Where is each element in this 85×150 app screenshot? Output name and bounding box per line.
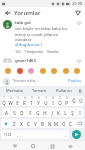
button[interactable]: Geri	[3, 8, 12, 17]
button[interactable]: Gönder	[73, 8, 82, 17]
button[interactable]: Emoji	[39, 67, 47, 75]
staticText: .	[65, 132, 67, 138]
button[interactable]: 4	[21, 96, 28, 106]
staticText: D	[20, 110, 24, 116]
staticText: P	[65, 100, 68, 106]
button[interactable]: tatlı gül	[0, 18, 85, 56]
button[interactable]: 5	[28, 96, 35, 106]
button[interactable]: Emoji	[73, 67, 81, 75]
button[interactable]: K	[55, 108, 62, 117]
staticText: Tamam	[32, 88, 46, 93]
staticText: E	[16, 100, 19, 106]
button[interactable]: 1 beğenme	[24, 49, 47, 54]
button[interactable]: Beğen	[76, 20, 82, 26]
button[interactable]: M	[53, 119, 60, 128]
button[interactable]: 3	[14, 96, 21, 106]
button[interactable]: Emoji	[16, 67, 24, 75]
button[interactable]: 6	[35, 96, 42, 106]
button[interactable]: Ç	[67, 119, 74, 128]
staticText: 6	[38, 96, 40, 100]
button[interactable]: A	[2, 108, 10, 117]
button[interactable]: Kullanıcı	[51, 86, 76, 95]
button[interactable]: N	[46, 119, 53, 128]
button[interactable]: Shift	[1, 119, 11, 128]
staticText: R	[23, 100, 26, 106]
button[interactable]: Yorum ekle…	[13, 78, 68, 84]
staticText: 8	[52, 96, 54, 100]
staticText: tatlı gül	[15, 20, 31, 26]
button[interactable]: C	[25, 119, 32, 128]
button[interactable]: Son kullanılanlar	[48, 142, 56, 150]
staticText: 0	[66, 96, 68, 100]
staticText: L	[64, 110, 67, 116]
staticText: Ş	[71, 110, 74, 116]
button[interactable]: L	[62, 108, 69, 117]
staticText: W	[8, 100, 13, 106]
staticText: Z	[13, 121, 16, 127]
button[interactable]: I	[76, 108, 83, 117]
button[interactable]: Mikrofon	[76, 86, 83, 95]
button[interactable]: 12s	[15, 49, 24, 54]
staticText: N	[48, 121, 52, 127]
button[interactable]: 9	[56, 96, 63, 106]
button[interactable]: Ö	[60, 119, 67, 128]
button[interactable]: G	[34, 108, 41, 117]
staticText: Y	[37, 100, 40, 106]
button[interactable]: Emoji	[50, 67, 58, 75]
staticText: Kullanıcı	[56, 88, 72, 93]
button[interactable]: Beğen	[76, 58, 82, 63]
button[interactable]: Z	[11, 119, 18, 128]
staticText: 7	[45, 96, 47, 100]
button[interactable]: ,	[14, 130, 21, 139]
button[interactable]: J	[48, 108, 55, 117]
staticText: V	[34, 121, 37, 127]
button[interactable]: .	[62, 130, 69, 139]
button[interactable]: Klavye değiştir	[66, 142, 74, 150]
button[interactable]: Emoji	[27, 67, 35, 75]
button[interactable]: Yanıtla	[47, 49, 62, 54]
button[interactable]: Gönder	[72, 130, 81, 139]
staticText: Yorumlar	[14, 9, 41, 17]
button[interactable]: B	[39, 119, 46, 128]
staticText: 4	[24, 96, 26, 100]
staticText: H	[43, 110, 47, 116]
button[interactable]: Ü	[77, 96, 84, 106]
button[interactable]: 8	[49, 96, 56, 106]
button[interactable]: Merhaba	[2, 86, 26, 95]
staticText: @dogdurust.)	[15, 42, 42, 48]
button[interactable]: Tamam	[26, 86, 51, 95]
staticText: Ç	[69, 121, 72, 127]
button[interactable]: 2	[7, 96, 14, 106]
staticText: sen böyle mi takip kalıp bu emoji iz cev…	[15, 26, 76, 42]
staticText: Ü	[79, 98, 83, 104]
button[interactable]: H	[41, 108, 48, 117]
button[interactable]: gezer1463	[0, 56, 85, 65]
staticText: Ğ	[72, 98, 76, 104]
button[interactable]: Ş	[69, 108, 76, 117]
button[interactable]: S	[10, 108, 18, 117]
button[interactable]: Sil	[74, 119, 84, 128]
staticText: U	[44, 100, 48, 106]
button[interactable]: Ana ekran	[29, 142, 37, 150]
button[interactable]: 1	[1, 96, 7, 106]
button[interactable]: V	[32, 119, 39, 128]
staticText: Merhaba	[6, 88, 23, 93]
button[interactable]: ?123	[1, 130, 14, 139]
button[interactable]: Emoji	[62, 67, 70, 75]
button[interactable]: 7	[42, 96, 49, 106]
staticText: 20:08	[72, 1, 83, 6]
button[interactable]: D	[18, 108, 26, 117]
staticText: gezer1463	[15, 58, 36, 63]
button[interactable]: Paylaş	[68, 78, 82, 84]
staticText: O	[58, 100, 62, 106]
button[interactable]: X	[18, 119, 25, 128]
button[interactable]: Ğ	[70, 96, 77, 106]
button[interactable]: F	[26, 108, 34, 117]
button[interactable]: Emoji	[4, 67, 12, 75]
staticText: T	[30, 100, 33, 106]
staticText: G	[36, 110, 40, 116]
staticText: X	[20, 121, 23, 127]
button[interactable]: 0	[63, 96, 70, 106]
button[interactable]: Geri	[11, 142, 19, 150]
